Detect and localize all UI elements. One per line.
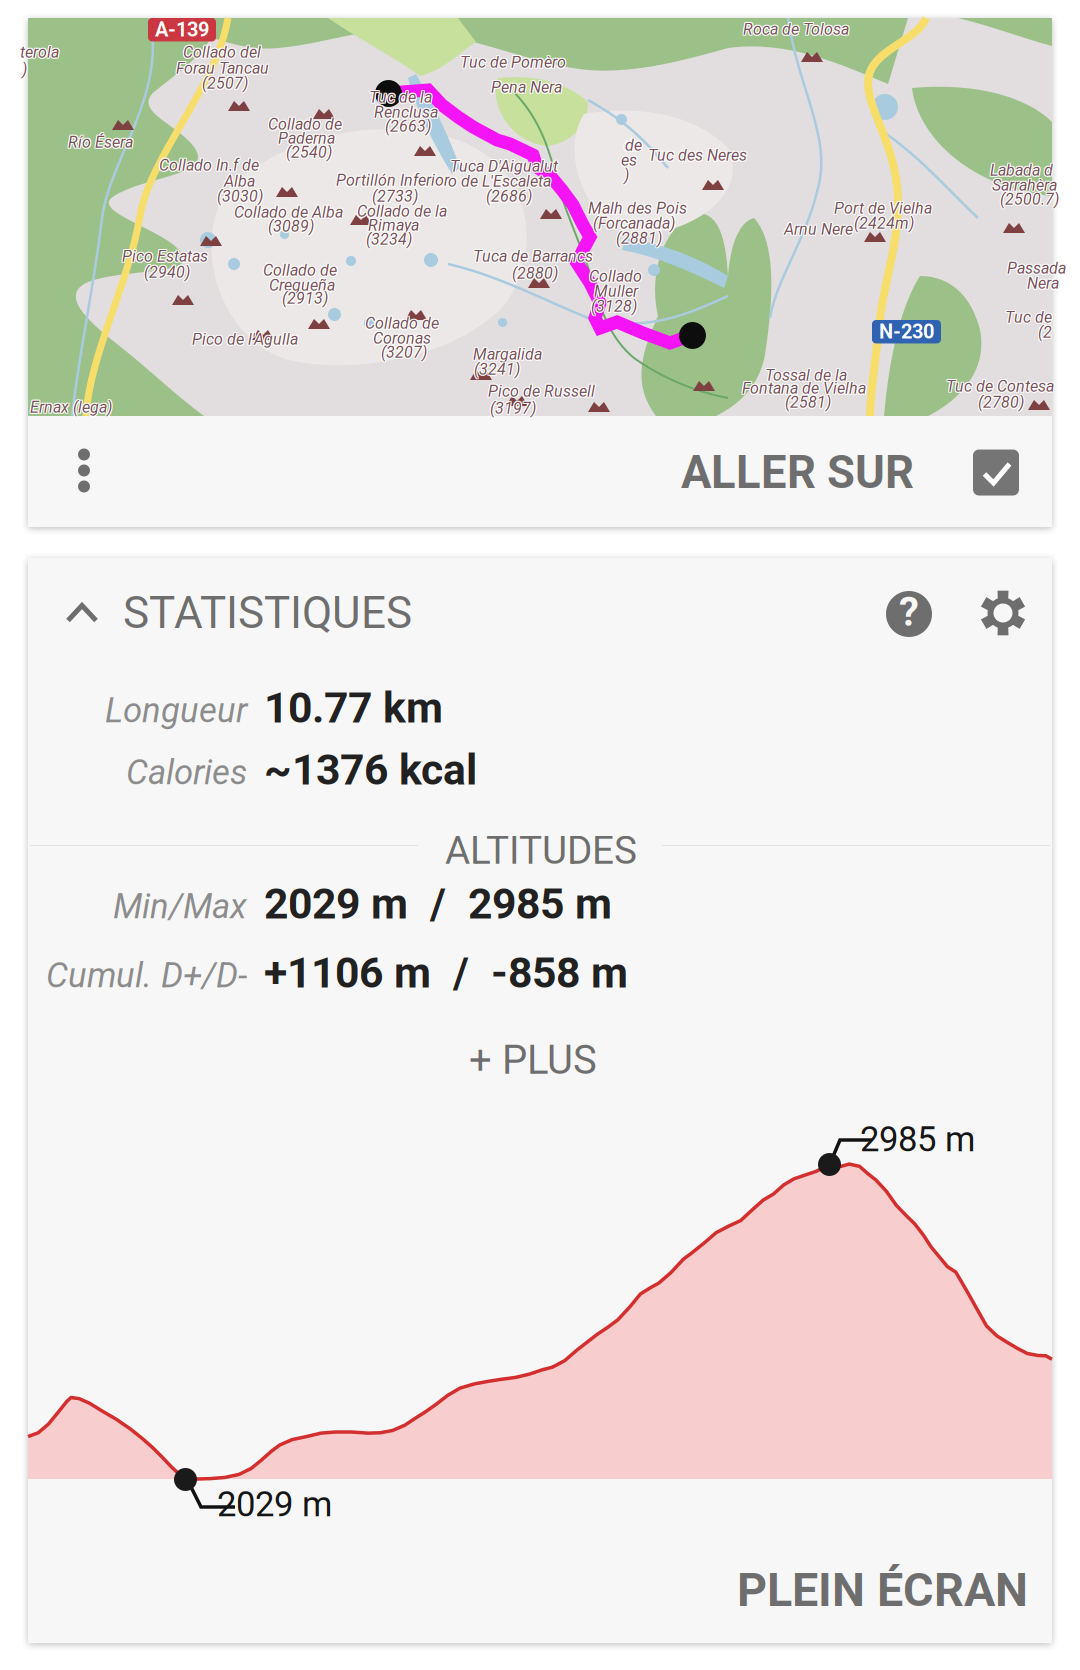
staticText: A-139	[155, 18, 209, 41]
staticText: )	[623, 165, 628, 184]
staticText: (2581)	[784, 393, 830, 412]
staticText: Río Ésera	[67, 134, 132, 153]
staticText: Tuc des Neres	[648, 147, 747, 166]
staticText: Collado de Alba	[233, 203, 342, 222]
staticText: (2540)	[287, 142, 333, 161]
staticText: ALLER SUR	[681, 446, 914, 499]
staticText: (2881)	[615, 228, 661, 247]
staticText: Alba	[225, 171, 256, 190]
staticText: Sarrahèra	[993, 177, 1058, 196]
staticText: Nera	[1026, 273, 1058, 292]
staticText: de	[626, 137, 643, 156]
button[interactable]: STATISTIQUES	[28, 565, 436, 661]
staticText: (3197)	[489, 399, 535, 418]
staticText: Pico de l'Agulla	[193, 329, 299, 348]
staticText: (Forcanada)	[594, 214, 676, 233]
staticText: (3207)	[382, 342, 428, 361]
staticText: (3030)	[217, 188, 263, 207]
staticText: terola	[21, 42, 60, 61]
staticText: de	[626, 135, 643, 154]
button[interactable]: Aide	[870, 571, 948, 657]
staticText: Forau Tancau	[175, 60, 268, 79]
staticText: Pico Estatas	[121, 246, 207, 265]
staticText: Tuc des Neres	[648, 146, 747, 165]
staticText: terola	[20, 44, 59, 63]
staticText: Cregueña	[268, 275, 334, 294]
staticText: o de L'Escaleta	[449, 171, 552, 190]
staticText: (2686)	[486, 187, 532, 206]
staticText: Tuc de Pomèro	[460, 54, 566, 73]
staticText: Pico de l'Agulla	[191, 330, 297, 349]
staticText: Tuc des Neres	[648, 145, 747, 164]
staticText: (2500.7)	[999, 190, 1058, 209]
button[interactable]: ALLER SUR	[653, 416, 1052, 529]
staticText: Pico de l'Agulla	[193, 330, 299, 349]
staticText: Coronas	[372, 330, 430, 349]
staticText: Renclusa	[373, 104, 437, 123]
staticText: (Forcanada)	[593, 213, 675, 232]
staticText: (2880)	[512, 264, 558, 283]
staticText: Renclusa	[375, 104, 439, 123]
staticText: (3197)	[490, 399, 536, 418]
staticText: Arnu Nere	[784, 219, 853, 238]
staticText: Pena Nera	[491, 78, 562, 97]
staticText: o de L'Escaleta	[447, 171, 550, 190]
button[interactable]: Réglages	[963, 570, 1043, 656]
staticText: (2581)	[786, 393, 832, 412]
staticText: (2913)	[283, 289, 329, 308]
staticText: terola	[19, 44, 58, 63]
staticText: de	[624, 136, 641, 155]
button[interactable]: PLEIN ÉCRAN	[709, 1538, 1056, 1642]
staticText: Coronas	[374, 329, 432, 348]
staticText: Arnu Nere	[784, 220, 853, 239]
staticText: Tuca D'Aigualut	[450, 158, 558, 177]
staticText: (2581)	[784, 392, 830, 411]
staticText: (2881)	[616, 230, 662, 249]
staticText: (2686)	[487, 187, 533, 206]
staticText: Arnu Nere	[783, 219, 852, 238]
staticText: Labada d	[989, 162, 1052, 181]
staticText: Pico Estatas	[121, 247, 207, 266]
staticText: (2581)	[785, 394, 831, 413]
staticText: Margalida	[472, 346, 541, 365]
staticText: Collado del	[182, 44, 260, 63]
staticText: Tuc des Neres	[649, 145, 748, 164]
staticText: Tuc de Contesa	[947, 376, 1055, 395]
staticText: (2	[1038, 322, 1052, 341]
staticText: Pico Estatas	[123, 248, 209, 267]
staticText: Pena Nera	[490, 79, 561, 98]
staticText: Collado	[588, 267, 641, 286]
staticText: (2	[1039, 323, 1053, 342]
staticText: (2424m)	[855, 214, 915, 233]
staticText: es	[621, 151, 637, 170]
staticText: Alba	[225, 172, 256, 191]
staticText: Portillón Inferior	[336, 172, 449, 191]
staticText: Roca de Tolosa	[744, 20, 850, 39]
staticText: Malh des Pois	[589, 200, 688, 219]
staticText: Forau Tancau	[175, 59, 268, 78]
staticText: (3089)	[268, 216, 314, 235]
button[interactable]: + PLUS	[403, 1025, 663, 1095]
staticText: Nera	[1027, 273, 1059, 292]
staticText: Forau Tancau	[175, 58, 268, 77]
staticText: Pico de Russell	[488, 381, 595, 400]
staticText: es	[620, 151, 636, 170]
staticText: Passada	[1007, 259, 1066, 278]
staticText: Pico de Russell	[488, 383, 595, 402]
staticText: Collado de	[262, 262, 336, 281]
staticText: Tuc de la	[369, 89, 432, 108]
staticText: Collado	[589, 268, 642, 287]
staticText: (2881)	[615, 230, 661, 249]
staticText: Paderna	[278, 128, 335, 147]
staticText: Collado del	[183, 42, 261, 61]
staticText: Roca de Tolosa	[742, 21, 848, 40]
button[interactable]: Plus d'options	[36, 414, 132, 527]
staticText: Collado de	[364, 314, 438, 333]
staticText: Labada d	[991, 160, 1054, 179]
staticText: Portillón Inferior	[337, 171, 450, 190]
staticText: (2424m)	[853, 215, 913, 234]
staticText: (2880)	[513, 264, 559, 283]
staticText: Tuca de Barrancs	[472, 248, 592, 267]
staticText: es	[620, 150, 636, 169]
staticText: Tuc de la	[368, 88, 431, 107]
